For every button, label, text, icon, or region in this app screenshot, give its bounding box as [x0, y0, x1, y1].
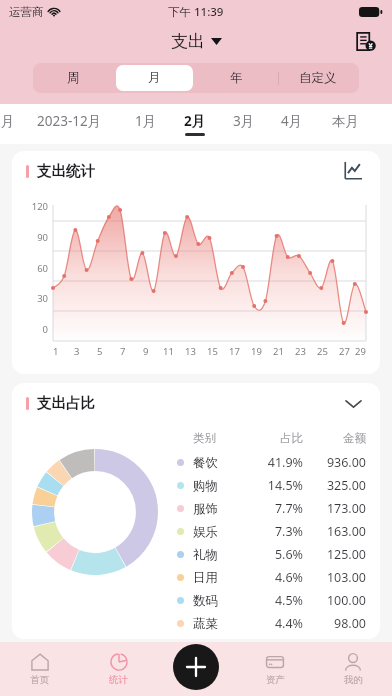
staticText: 1 — [53, 345, 59, 358]
staticText: 运营商 — [9, 5, 44, 19]
staticText: 41.9% — [253, 454, 303, 471]
button[interactable]: 蔬菜 — [177, 612, 366, 635]
button[interactable]: 我的 — [314, 642, 392, 696]
staticText: 蔬菜 — [193, 616, 218, 632]
staticText: 103.00 — [309, 569, 366, 586]
staticText: 120 — [31, 200, 48, 213]
staticText: 11 — [163, 345, 174, 358]
button[interactable]: 1月 — [122, 104, 170, 144]
staticText: 我的 — [344, 674, 363, 686]
staticText: 19 — [251, 345, 262, 358]
staticText: 3月 — [233, 112, 255, 130]
button[interactable]: Chart view — [340, 158, 366, 184]
staticText: 60 — [37, 262, 48, 275]
staticText: 163.00 — [309, 523, 366, 540]
staticText: 98.00 — [309, 615, 366, 632]
staticText: 4.6% — [253, 569, 303, 586]
staticText: 125.00 — [309, 546, 366, 563]
staticText: 占比 — [253, 431, 303, 445]
staticText: 23 — [295, 345, 306, 358]
staticText: 娱乐 — [193, 524, 218, 540]
staticText: 支出 — [171, 31, 205, 52]
staticText: 下午 11:39 — [168, 4, 224, 20]
button[interactable]: 数码 — [177, 589, 366, 612]
button[interactable]: 服饰 — [177, 497, 366, 520]
button[interactable]: 本月 — [316, 104, 374, 144]
staticText: 2023-12月 — [37, 112, 102, 130]
staticText: 5.6% — [253, 546, 303, 563]
staticText: 7.3% — [253, 523, 303, 540]
button[interactable]: 支出 — [171, 31, 222, 52]
staticText: 4.5% — [253, 592, 303, 609]
button[interactable]: 日用 — [177, 566, 366, 589]
staticText: 资产 — [266, 674, 285, 686]
staticText: 周 — [67, 70, 80, 86]
staticText: 自定义 — [299, 70, 337, 86]
button[interactable]: 资产 — [236, 642, 314, 696]
staticText: 统计 — [109, 674, 128, 686]
staticText: 购物 — [193, 478, 218, 494]
button[interactable]: 月 — [116, 65, 193, 91]
staticText: 年 — [230, 70, 243, 86]
button[interactable]: 2月 — [170, 104, 220, 144]
staticText: 7.7% — [253, 500, 303, 517]
staticText: 90 — [37, 231, 48, 244]
staticText: 0 — [42, 323, 48, 336]
staticText: 日用 — [193, 570, 218, 586]
staticText: 支出占比 — [37, 394, 95, 412]
staticText: 100.00 — [309, 592, 366, 609]
staticText: 21 — [273, 345, 284, 358]
button[interactable]: Bill list — [349, 25, 381, 57]
staticText: 5 — [97, 345, 103, 358]
staticText: 数码 — [193, 593, 218, 609]
button[interactable]: 首页 — [0, 642, 79, 696]
staticText: 服饰 — [193, 501, 218, 517]
staticText: 2月 — [184, 112, 206, 130]
staticText: 7 — [120, 345, 126, 358]
staticText: 本月 — [332, 113, 359, 130]
staticText: 类别 — [193, 431, 216, 445]
staticText: 4.4% — [253, 615, 303, 632]
staticText: 1月 — [135, 112, 157, 130]
button[interactable]: 餐饮 — [177, 451, 366, 474]
staticText: 3 — [74, 345, 80, 358]
button[interactable]: 月 — [0, 104, 16, 144]
staticText: 25 — [317, 345, 328, 358]
staticText: 月 — [148, 70, 161, 86]
staticText: 17 — [229, 345, 240, 358]
button[interactable]: 娱乐 — [177, 520, 366, 543]
button[interactable]: 购物 — [177, 474, 366, 497]
button[interactable]: 礼物 — [177, 543, 366, 566]
staticText: 礼物 — [193, 547, 218, 563]
staticText: 936.00 — [309, 454, 366, 471]
staticText: 27 — [339, 345, 350, 358]
staticText: 月 — [1, 113, 15, 130]
button[interactable]: 年 — [197, 65, 275, 91]
staticText: 首页 — [30, 674, 49, 686]
button[interactable]: 统计 — [79, 642, 158, 696]
button[interactable]: 3月 — [220, 104, 268, 144]
staticText: 30 — [37, 292, 48, 305]
staticText: 13 — [185, 345, 196, 358]
staticText: 325.00 — [309, 477, 366, 494]
button[interactable]: 2023-12月 — [16, 104, 122, 144]
staticText: 4月 — [281, 112, 303, 130]
button[interactable]: 4月 — [268, 104, 316, 144]
staticText: 14.5% — [253, 477, 303, 494]
button[interactable]: 周 — [35, 65, 112, 91]
staticText: 173.00 — [309, 500, 366, 517]
staticText: 餐饮 — [193, 455, 218, 471]
staticText: 支出统计 — [37, 162, 95, 180]
staticText: 15 — [207, 345, 218, 358]
staticText: 29 — [355, 345, 366, 358]
staticText: 9 — [143, 345, 149, 358]
button[interactable]: Collapse — [340, 390, 366, 416]
button[interactable]: 自定义 — [279, 65, 357, 91]
staticText: 金额 — [309, 431, 366, 445]
button[interactable]: Add record — [173, 644, 219, 690]
